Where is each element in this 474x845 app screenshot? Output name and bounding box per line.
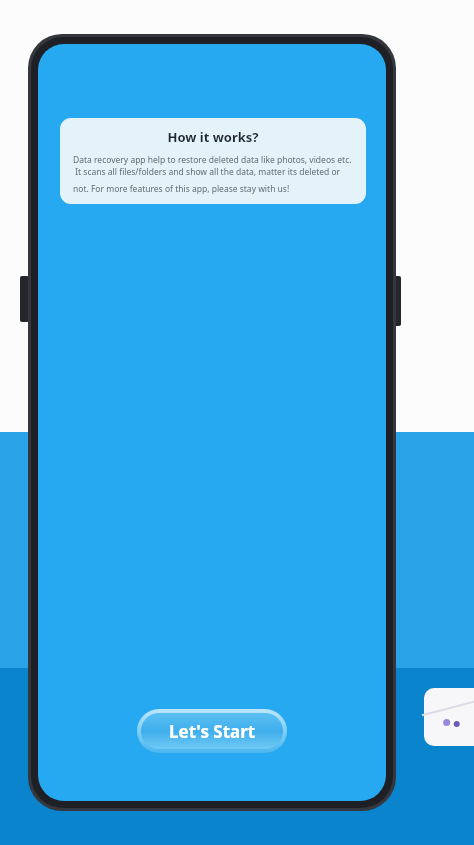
staticText: How it works? — [73, 128, 353, 146]
button[interactable]: How it works? — [60, 118, 366, 204]
staticText: It scans all files/folders and show all … — [73, 166, 353, 194]
staticText: Let's Start — [169, 720, 256, 743]
staticText: Data recovery app help to restore delete… — [73, 154, 352, 166]
button[interactable]: Let's Start — [137, 709, 287, 753]
